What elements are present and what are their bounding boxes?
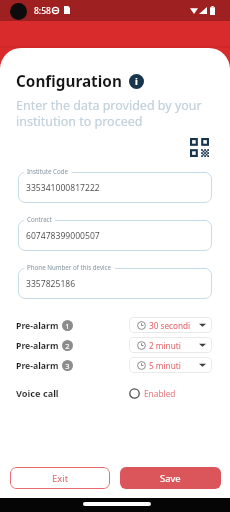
- staticText: 1: [65, 321, 70, 331]
- staticText: 3: [65, 361, 70, 371]
- staticText: 2: [65, 341, 70, 351]
- staticText: Save: [160, 472, 181, 485]
- button[interactable]: Scan QR code: [190, 138, 209, 157]
- staticText: 3357825186: [26, 278, 76, 290]
- button[interactable]: 30 secondi: [129, 317, 212, 333]
- button[interactable]: 3357825186: [18, 268, 212, 299]
- staticText: 5 minuti: [149, 360, 181, 371]
- button[interactable]: Save: [120, 467, 221, 489]
- staticText: 607478399000507: [26, 230, 100, 242]
- staticText: Voice call: [16, 387, 59, 400]
- staticText: 2 minuti: [149, 340, 181, 351]
- staticText: 335341000817222: [26, 182, 100, 194]
- staticText: Pre-alarm: [16, 340, 59, 352]
- staticText: Enter the data provided by your institut…: [16, 97, 208, 129]
- staticText: 8:58: [34, 5, 51, 17]
- button[interactable]: 335341000817222: [18, 172, 212, 203]
- staticText: Enabled: [144, 388, 176, 399]
- staticText: Pre-alarm: [16, 360, 59, 372]
- staticText: Pre-alarm: [16, 320, 59, 332]
- staticText: Configuration: [16, 71, 122, 92]
- staticText: 30 secondi: [149, 320, 191, 331]
- button[interactable]: Information: [129, 74, 144, 89]
- staticText: Exit: [52, 472, 69, 485]
- staticText: Institute Code: [27, 167, 69, 175]
- button[interactable]: Enabled: [129, 385, 230, 402]
- button[interactable]: Exit: [10, 467, 110, 489]
- staticText: Phone Number of this device: [27, 263, 112, 271]
- staticText: i: [135, 75, 138, 88]
- button[interactable]: 607478399000507: [18, 220, 212, 251]
- staticText: Contract: [27, 215, 52, 223]
- button[interactable]: 5 minuti: [129, 357, 212, 373]
- button[interactable]: 2 minuti: [129, 337, 212, 353]
